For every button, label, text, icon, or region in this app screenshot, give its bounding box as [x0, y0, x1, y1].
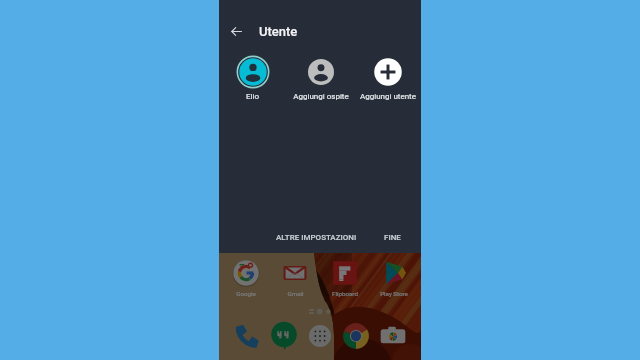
- button[interactable]: Play Store: [372, 259, 416, 297]
- button[interactable]: Flipboard: [323, 259, 367, 297]
- button[interactable]: Back: [227, 22, 246, 41]
- button[interactable]: Chrome: [342, 322, 370, 350]
- button[interactable]: Gmail: [273, 259, 317, 297]
- button[interactable]: Google: [224, 259, 268, 297]
- button[interactable]: Camera: [379, 322, 407, 350]
- button[interactable]: Aggiungi utente: [354, 55, 421, 101]
- button[interactable]: FINE: [369, 227, 421, 248]
- button[interactable]: Phone: [233, 322, 261, 350]
- staticText: Aggiungi ospite: [293, 92, 349, 101]
- staticText: Play Store: [380, 290, 408, 297]
- staticText: Flipboard: [332, 290, 358, 297]
- button[interactable]: Elio: [219, 55, 286, 101]
- staticText: Elio: [246, 92, 259, 101]
- staticText: ALTRE IMPOSTAZIONI: [276, 233, 357, 242]
- staticText: Utente: [259, 24, 298, 39]
- staticText: Aggiungi utente: [360, 92, 416, 101]
- button[interactable]: All apps: [306, 322, 334, 350]
- button[interactable]: Aggiungi ospite: [287, 55, 354, 101]
- button[interactable]: Hangouts: [270, 322, 298, 350]
- staticText: Google: [236, 290, 256, 297]
- button[interactable]: ALTRE IMPOSTAZIONI: [270, 227, 369, 248]
- staticText: Gmail: [287, 290, 304, 297]
- staticText: FINE: [384, 233, 401, 242]
